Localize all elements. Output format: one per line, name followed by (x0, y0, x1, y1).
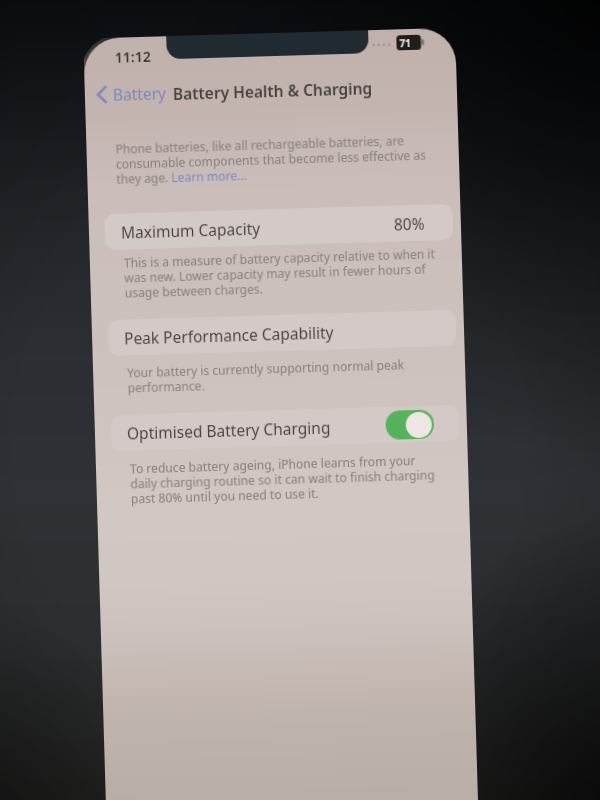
button[interactable]: Back to Battery (95, 79, 167, 107)
staticText: Maximum Capacity (121, 217, 261, 243)
staticText: To reduce battery ageing, iPhone learns … (130, 451, 436, 506)
button[interactable]: Maximum Capacity (104, 204, 453, 250)
button[interactable]: Peak Performance Capability (108, 310, 456, 356)
staticText: 11:12 (114, 47, 151, 67)
staticText: Your battery is currently supporting nor… (127, 356, 406, 395)
button[interactable]: Optimised Battery Charging (110, 405, 459, 451)
staticText: 80% (393, 213, 425, 234)
button[interactable]: Learn more... (171, 167, 247, 185)
staticText: Optimised Battery Charging (127, 416, 331, 443)
staticText: Peak Performance Capability (124, 321, 334, 349)
staticText: Battery Health & Charging (173, 77, 373, 104)
staticText: This is a measure of battery capacity re… (124, 245, 437, 300)
staticText: Battery (113, 82, 167, 105)
button[interactable]: Optimised Battery Charging toggle (385, 409, 434, 440)
staticText: 71 (399, 36, 412, 50)
staticText: Phone batteries, like all rechargeable b… (115, 132, 427, 187)
